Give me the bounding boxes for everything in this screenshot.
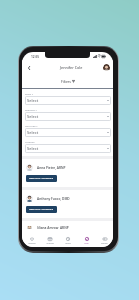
button[interactable]: Select [25, 144, 111, 153]
staticText: 12:55 [31, 55, 40, 59]
staticText: Anna Pietre, ARNP [37, 166, 66, 170]
staticText: Roles * [25, 92, 33, 95]
button[interactable]: Select [25, 128, 111, 137]
staticText: Select [27, 114, 39, 119]
staticText: VIEW FULL SCHEDULE [29, 177, 54, 180]
button[interactable]: Favorites [22, 234, 41, 247]
staticText: Filters [61, 79, 71, 84]
staticText: Jennifer Cole [60, 65, 83, 70]
staticText: Visit Type * [25, 124, 38, 127]
staticText: Select [27, 130, 39, 135]
staticText: Records [101, 242, 108, 244]
staticText: History [65, 242, 71, 244]
staticText: Schedule [46, 242, 54, 244]
button[interactable]: VIEW FULL SCHEDULE [26, 206, 57, 213]
button[interactable]: Filters [22, 74, 113, 88]
button[interactable]: Anthony Fuoco, DMD [22, 190, 113, 218]
staticText: Select [27, 146, 39, 151]
button[interactable]: Profile [103, 64, 110, 71]
staticText: VIEW FULL SCHEDULE [29, 208, 54, 211]
button[interactable]: History [59, 234, 77, 247]
staticText: Specialty * [25, 108, 37, 111]
button[interactable]: Anna Pietre, ARNP [22, 159, 113, 187]
button[interactable]: Jiliana Amrow, ARNP [22, 221, 113, 234]
button[interactable]: Select [25, 96, 111, 105]
button[interactable]: VIEW FULL SCHEDULE [26, 175, 57, 182]
staticText: Select [27, 98, 39, 103]
staticText: Tasks [84, 242, 89, 244]
button[interactable]: Select [25, 112, 111, 121]
staticText: Favorites [28, 242, 36, 244]
button[interactable]: Records [95, 234, 113, 247]
button[interactable]: Tasks [77, 234, 95, 247]
button[interactable]: Back [24, 63, 33, 72]
staticText: Anthony Fuoco, DMD [37, 197, 70, 201]
staticText: Jiliana Amrow, ARNP [37, 226, 69, 229]
button[interactable]: Schedule [41, 234, 59, 247]
staticText: Location [25, 140, 35, 143]
